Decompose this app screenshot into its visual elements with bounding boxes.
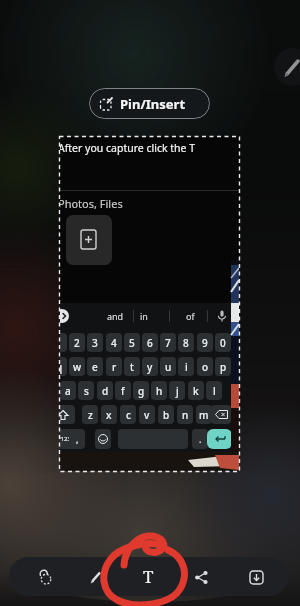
staticText: 9: [202, 336, 208, 350]
staticText: e: [92, 360, 98, 374]
staticText: 4: [111, 336, 117, 350]
staticText: After you capture click the T: [60, 141, 196, 155]
staticText: l: [213, 384, 216, 398]
staticText: j: [176, 384, 179, 398]
staticText: n: [182, 408, 189, 422]
staticText: f: [121, 384, 125, 398]
staticText: c: [126, 408, 131, 422]
staticText: s: [84, 384, 89, 398]
staticText: t: [130, 360, 134, 374]
staticText: k: [193, 384, 199, 398]
staticText: Photos, Files: [60, 196, 123, 211]
staticText: and: [107, 310, 124, 322]
staticText: z: [88, 408, 93, 422]
staticText: x: [106, 408, 112, 422]
staticText: 3: [92, 336, 98, 350]
staticText: 1: [60, 336, 62, 350]
staticText: 6: [147, 336, 153, 350]
staticText: 5: [129, 336, 135, 350]
button[interactable]: [82, 563, 110, 591]
staticText: 7: [165, 336, 171, 350]
staticText: ?123: [60, 435, 71, 443]
button[interactable]: [187, 563, 215, 591]
staticText: b: [163, 408, 170, 422]
staticText: g: [138, 384, 145, 398]
staticText: 2: [74, 336, 80, 350]
staticText: .: [199, 433, 202, 445]
button[interactable]: Pin/Insert: [89, 88, 210, 119]
staticText: T: [143, 565, 154, 588]
staticText: Pin/Insert: [120, 95, 186, 113]
staticText: h: [156, 384, 163, 398]
staticText: a: [65, 384, 71, 398]
staticText: v: [144, 408, 150, 422]
staticText: ,: [76, 433, 79, 445]
staticText: w: [73, 360, 82, 374]
button[interactable]: [274, 48, 300, 86]
staticText: m: [199, 408, 209, 422]
button[interactable]: [242, 563, 270, 591]
button[interactable]: [31, 563, 59, 591]
staticText: q: [60, 360, 63, 374]
staticText: y: [147, 360, 153, 374]
staticText: in: [140, 310, 148, 322]
staticText: p: [220, 360, 227, 374]
button[interactable]: T: [134, 562, 162, 590]
staticText: o: [202, 360, 209, 374]
staticText: d: [102, 384, 109, 398]
staticText: i: [185, 360, 188, 374]
staticText: r: [112, 360, 117, 374]
staticText: of: [186, 310, 195, 322]
staticText: 8: [183, 336, 189, 350]
staticText: 0: [220, 336, 226, 350]
staticText: u: [165, 360, 172, 374]
